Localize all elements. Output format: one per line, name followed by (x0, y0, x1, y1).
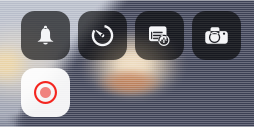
button[interactable]: Timer (78, 11, 127, 60)
button[interactable]: Camera (192, 11, 241, 60)
button[interactable]: New Note (135, 11, 184, 60)
button[interactable]: Record (21, 68, 70, 117)
button[interactable]: Notifications (21, 11, 70, 60)
